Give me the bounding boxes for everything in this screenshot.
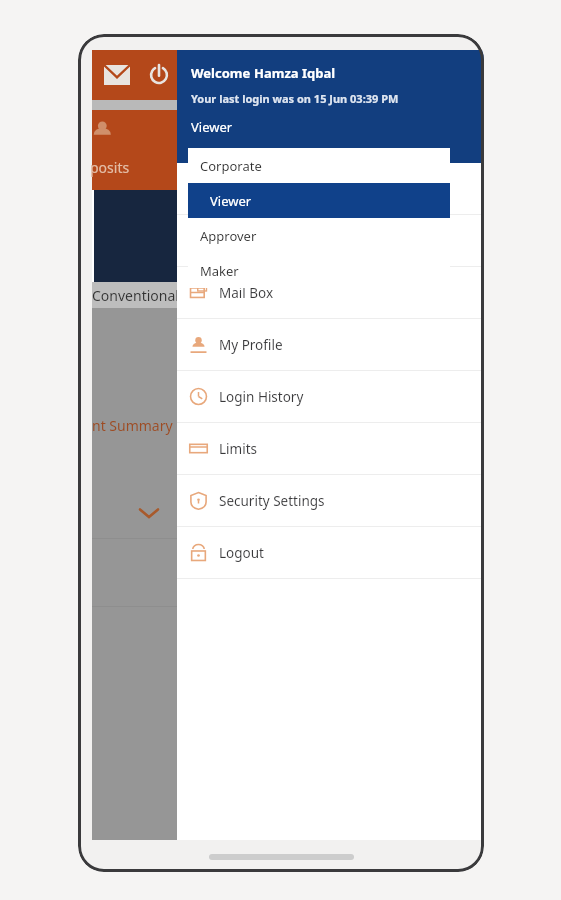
button[interactable]: Login History <box>177 371 484 422</box>
button[interactable]: Security Settings <box>177 475 484 526</box>
staticText: Cheque Printing <box>219 232 322 250</box>
button[interactable]: Corporate <box>188 148 450 183</box>
staticText: Login History <box>219 388 304 406</box>
staticText: Approver <box>200 227 257 245</box>
staticText: Hamza Iqbal <box>254 64 336 82</box>
staticText: Viewer <box>191 118 233 136</box>
staticText: Corporate <box>200 157 262 175</box>
button[interactable]: Maker <box>188 253 450 288</box>
staticText: Mail Box <box>219 284 274 302</box>
staticText: Reports <box>219 180 269 198</box>
staticText: Limits <box>219 440 258 458</box>
staticText: Viewer <box>210 192 252 210</box>
button[interactable]: Mail Box <box>177 267 484 318</box>
button[interactable]: Cheque Printing <box>177 215 484 266</box>
staticText: Conventional <box>92 286 179 305</box>
staticText: My Profile <box>219 336 283 354</box>
staticText: Your last login was on 15 Jun 03:39 PM <box>191 91 399 106</box>
staticText: nt Summary <box>92 416 173 435</box>
button[interactable]: Viewer <box>188 183 450 218</box>
button[interactable]: Logout <box>177 527 484 578</box>
staticText: Logout <box>219 544 264 562</box>
staticText: posits <box>90 158 130 177</box>
button[interactable]: Reports <box>177 163 484 214</box>
staticText: Welcome <box>191 64 254 82</box>
button[interactable]: Viewer <box>191 118 484 136</box>
staticText: Maker <box>200 262 239 280</box>
button[interactable]: Approver <box>188 218 450 253</box>
button[interactable]: Limits <box>177 423 484 474</box>
button[interactable]: My Profile <box>177 319 484 370</box>
staticText: Security Settings <box>219 492 325 510</box>
